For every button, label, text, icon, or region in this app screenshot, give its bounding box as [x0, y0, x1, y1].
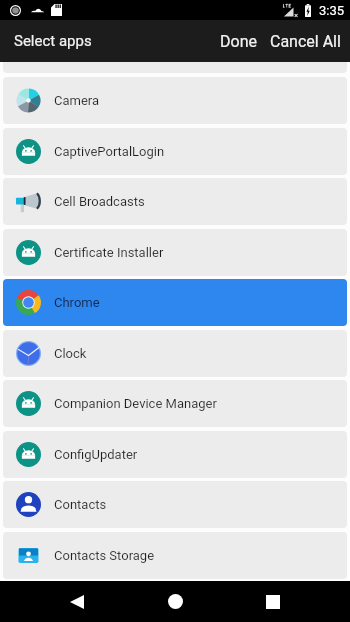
staticText: Cancel All — [270, 32, 341, 51]
staticText: Chrome — [54, 295, 100, 310]
staticText: Certificate Installer — [54, 245, 164, 260]
button[interactable]: Chrome — [3, 279, 347, 326]
button[interactable]: Back — [53, 581, 101, 622]
staticText: Contacts Storage — [54, 548, 155, 563]
staticText: Done — [220, 32, 257, 51]
button[interactable]: Camera — [3, 77, 347, 124]
staticText: Companion Device Manager — [54, 396, 217, 411]
button[interactable]: ConfigUpdater — [3, 431, 347, 478]
staticText: CaptivePortalLogin — [54, 144, 165, 159]
staticText: Cell Broadcasts — [54, 194, 145, 209]
staticText: Camera — [54, 93, 100, 108]
button[interactable]: Cell Broadcasts — [3, 178, 347, 225]
button[interactable]: Done — [213, 20, 265, 62]
button[interactable]: Clock — [3, 330, 347, 377]
button[interactable]: Home — [151, 581, 199, 622]
staticText: Clock — [54, 346, 87, 361]
staticText: Contacts — [54, 497, 107, 512]
button[interactable]: Companion Device Manager — [3, 380, 347, 427]
button[interactable]: CaptivePortalLogin — [3, 128, 347, 175]
button[interactable]: Contacts — [3, 481, 347, 528]
button[interactable]: Certificate Installer — [3, 229, 347, 276]
staticText: 3:35 — [319, 3, 345, 18]
staticText: Select apps — [14, 32, 92, 50]
button[interactable]: Recent apps — [249, 581, 297, 622]
button[interactable]: Contacts Storage — [3, 532, 347, 579]
button[interactable]: Cancel All — [265, 20, 350, 62]
staticText: ConfigUpdater — [54, 447, 138, 462]
